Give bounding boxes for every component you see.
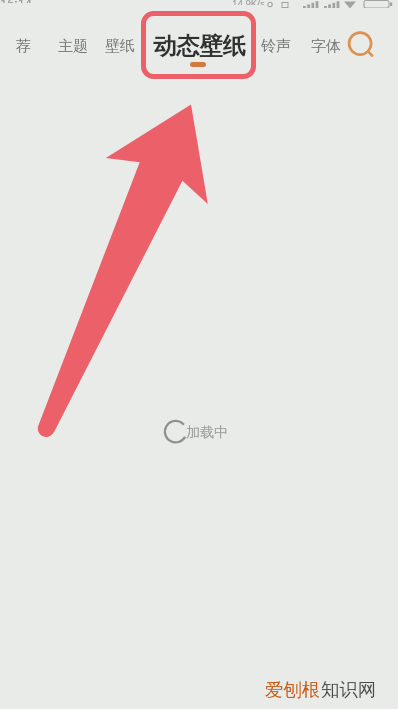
staticText: 铃声: [261, 37, 291, 56]
button[interactable]: 字体: [311, 37, 341, 56]
button[interactable]: Search: [343, 26, 379, 62]
staticText: 加载中: [186, 424, 228, 442]
staticText: 知识网: [321, 678, 377, 701]
staticText: 字体: [311, 37, 341, 56]
staticText: 动态壁纸: [153, 32, 246, 61]
staticText: 16:14: [0, 0, 32, 3]
button[interactable]: 铃声: [261, 37, 291, 56]
button[interactable]: 荐: [16, 37, 31, 56]
staticText: 壁纸: [105, 37, 135, 56]
button[interactable]: 动态壁纸: [153, 32, 246, 61]
button[interactable]: 主题: [58, 37, 88, 56]
staticText: 爱刨根: [265, 678, 321, 701]
button[interactable]: 壁纸: [105, 37, 135, 56]
staticText: 荐: [16, 37, 31, 56]
staticText: 主题: [58, 37, 88, 56]
staticText: 14.9K/s: [232, 0, 265, 5]
